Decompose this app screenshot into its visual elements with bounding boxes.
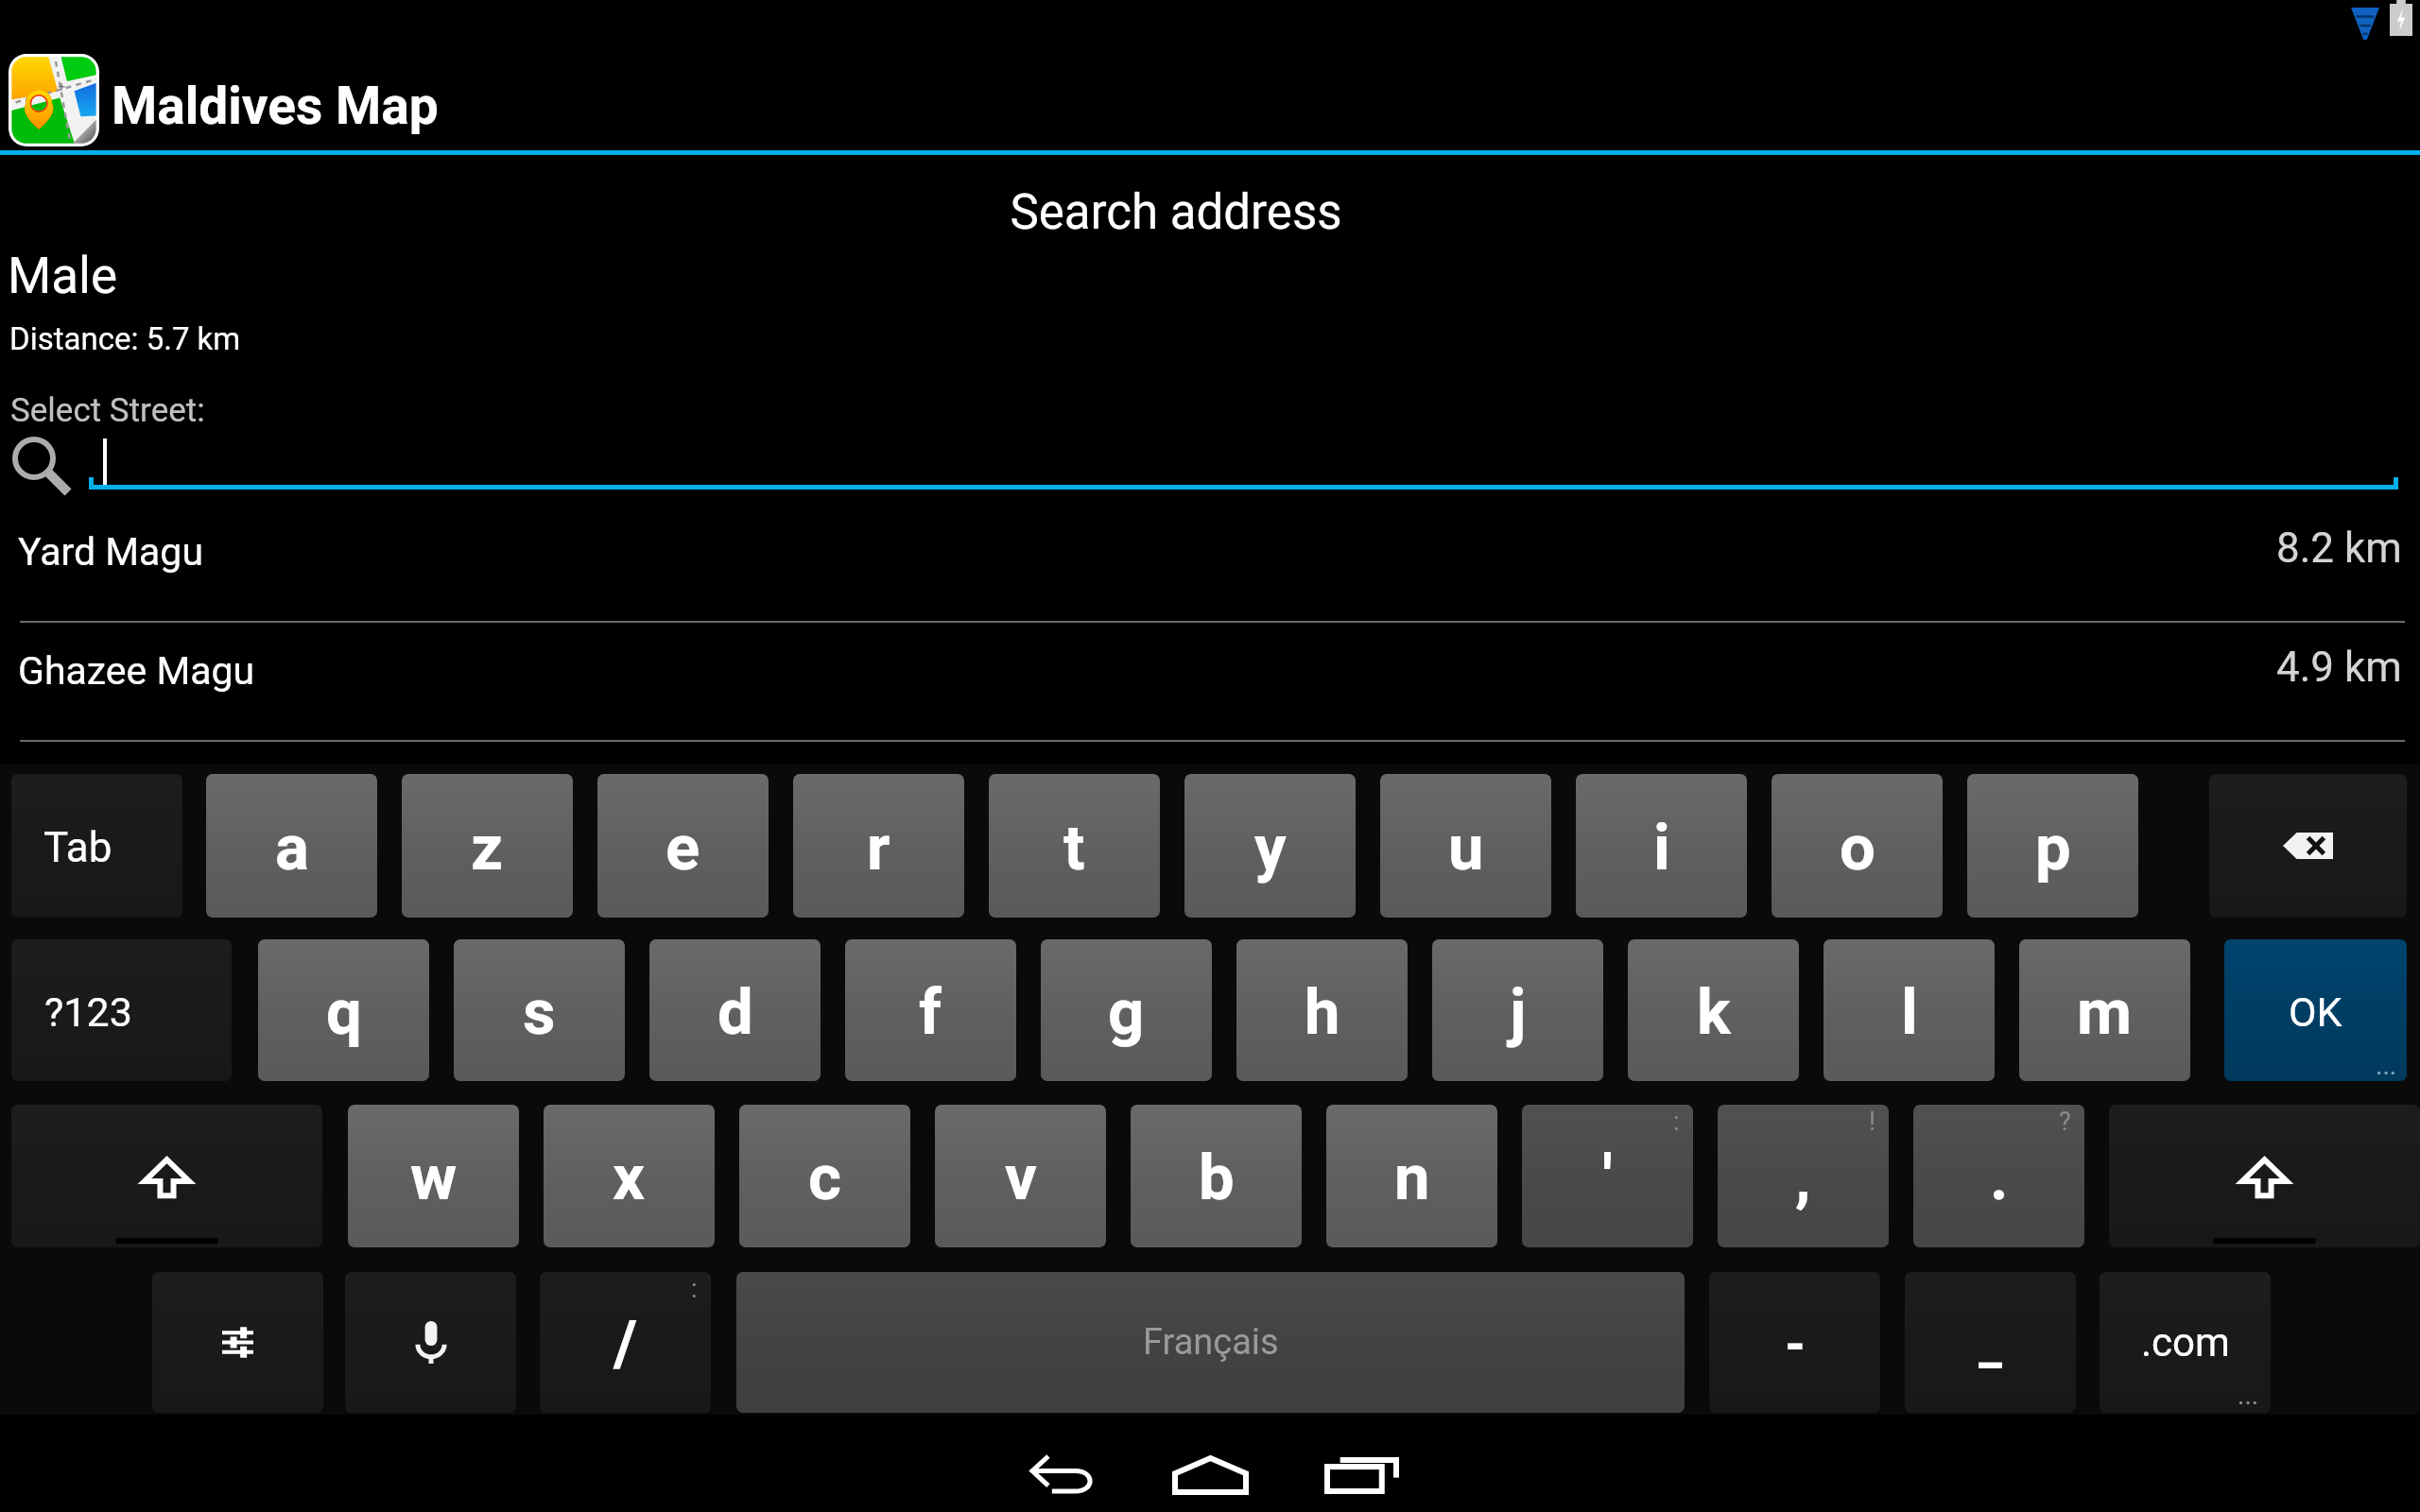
button[interactable]: l <box>1824 939 1995 1081</box>
staticText: g <box>1108 975 1145 1050</box>
button[interactable]: Ghazee Magu <box>0 623 2420 742</box>
button[interactable]: t <box>989 774 1160 918</box>
button[interactable]: Home <box>1132 1415 1284 1512</box>
staticText: w <box>410 1141 458 1215</box>
button[interactable]: x <box>544 1105 715 1247</box>
button[interactable]: . <box>1913 1105 2084 1247</box>
button[interactable]: k <box>1628 939 1799 1081</box>
button[interactable]: Back <box>983 1415 1134 1512</box>
button[interactable]: Street search field <box>89 421 2398 490</box>
staticText: x <box>613 1141 646 1215</box>
staticText: q <box>326 975 362 1050</box>
button[interactable]: u <box>1380 774 1551 918</box>
staticText: c <box>808 1141 841 1215</box>
staticText: Français <box>1143 1321 1279 1364</box>
button[interactable]: Voice input <box>345 1272 516 1413</box>
button[interactable]: Tab <box>11 774 182 918</box>
button[interactable]: n <box>1326 1105 1497 1247</box>
button[interactable]: Français <box>736 1272 1685 1413</box>
staticText: t <box>1063 811 1085 885</box>
staticText: s <box>523 975 556 1050</box>
staticText: o <box>1840 811 1875 885</box>
staticText: Male <box>8 247 118 305</box>
button[interactable]: OK <box>2224 939 2407 1081</box>
button[interactable]: Yard Magu <box>0 503 2420 623</box>
staticText: f <box>919 975 942 1050</box>
button[interactable]: / <box>540 1272 711 1413</box>
button[interactable]: Backspace <box>2209 774 2407 918</box>
button[interactable]: y <box>1184 774 1356 918</box>
button[interactable]: h <box>1236 939 1408 1081</box>
staticText: _ <box>1979 1314 2003 1376</box>
staticText: .com <box>2141 1319 2230 1366</box>
staticText: m <box>2077 975 2133 1050</box>
staticText: : <box>1673 1107 1680 1137</box>
button[interactable]: r <box>793 774 964 918</box>
staticText: r <box>867 811 890 885</box>
staticText: p <box>2035 811 2071 885</box>
staticText: Tab <box>43 823 112 872</box>
button[interactable]: s <box>454 939 625 1081</box>
button[interactable]: i <box>1576 774 1747 918</box>
staticText: j <box>1510 975 1527 1050</box>
staticText: l <box>1901 975 1918 1050</box>
staticText: ... <box>2376 1050 2397 1081</box>
button[interactable]: z <box>402 774 573 918</box>
staticText: / <box>614 1307 638 1382</box>
button[interactable]: w <box>348 1105 519 1247</box>
button[interactable]: f <box>845 939 1016 1081</box>
staticText: u <box>1448 811 1484 885</box>
staticText: - <box>1785 1314 1806 1376</box>
staticText: Maldives Map <box>112 76 439 136</box>
button[interactable]: , <box>1718 1105 1889 1247</box>
button[interactable]: v <box>935 1105 1106 1247</box>
staticText: y <box>1254 811 1287 885</box>
staticText: 4.9 km <box>2276 643 2402 692</box>
button[interactable]: _ <box>1905 1272 2076 1413</box>
button[interactable]: Shift <box>2109 1105 2420 1247</box>
button[interactable]: e <box>597 774 769 918</box>
staticText: : <box>691 1274 698 1304</box>
button[interactable]: j <box>1432 939 1603 1081</box>
button[interactable]: Shift <box>11 1105 322 1247</box>
button[interactable]: ' <box>1522 1105 1693 1247</box>
button[interactable]: Recent apps <box>1285 1415 1436 1512</box>
staticText: 8.2 km <box>2276 524 2402 573</box>
button[interactable]: - <box>1709 1272 1880 1413</box>
staticText: ?123 <box>44 988 132 1036</box>
staticText: z <box>471 811 504 885</box>
button[interactable]: m <box>2019 939 2190 1081</box>
staticText: Select Street: <box>10 391 205 430</box>
staticText: b <box>1199 1141 1235 1215</box>
button[interactable]: p <box>1967 774 2138 918</box>
button[interactable]: Keyboard settings <box>152 1272 323 1413</box>
button[interactable]: ?123 <box>11 939 232 1081</box>
staticText: ... <box>2238 1380 2259 1411</box>
button[interactable]: a <box>206 774 377 918</box>
staticText: i <box>1653 811 1670 885</box>
staticText: k <box>1697 975 1731 1050</box>
staticText: Yard Magu <box>18 529 203 575</box>
button[interactable]: o <box>1772 774 1943 918</box>
staticText: n <box>1394 1141 1430 1215</box>
button[interactable]: g <box>1041 939 1212 1081</box>
staticText: a <box>275 811 309 885</box>
staticText: Search address <box>0 184 2352 241</box>
staticText: , <box>1795 1141 1811 1215</box>
staticText: d <box>717 975 753 1050</box>
button[interactable]: b <box>1131 1105 1302 1247</box>
staticText: v <box>1005 1141 1037 1215</box>
staticText: ' <box>1602 1141 1613 1215</box>
button[interactable]: d <box>649 939 821 1081</box>
staticText: OK <box>2289 988 2342 1036</box>
staticText: . <box>1990 1141 2009 1215</box>
staticText: h <box>1305 975 1340 1050</box>
staticText: ? <box>2059 1107 2071 1137</box>
staticText: Ghazee Magu <box>18 648 255 694</box>
button[interactable]: c <box>739 1105 910 1247</box>
staticText: e <box>665 811 700 885</box>
button[interactable]: .com <box>2100 1272 2271 1413</box>
staticText: Distance: 5.7 km <box>9 320 241 357</box>
button[interactable]: q <box>258 939 429 1081</box>
staticText: ! <box>1869 1107 1875 1137</box>
